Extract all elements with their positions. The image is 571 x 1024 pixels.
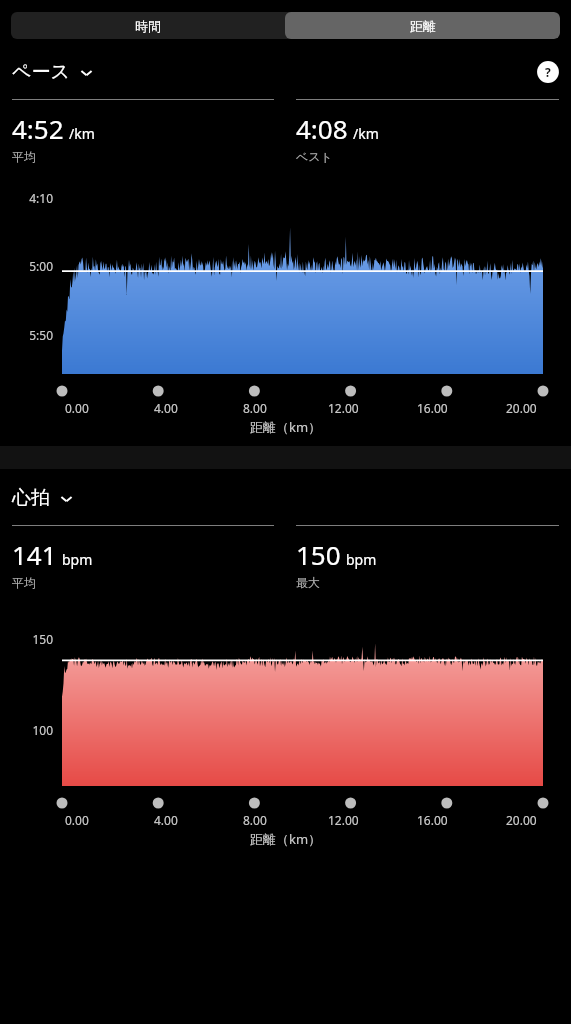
button[interactable]: 時間 bbox=[11, 12, 285, 39]
button[interactable]: ヘルプ bbox=[536, 60, 560, 84]
staticText: 150 bbox=[296, 537, 341, 572]
button[interactable]: 心拍 bbox=[0, 483, 571, 513]
staticText: 4:10 bbox=[3, 190, 53, 206]
staticText: 平均 bbox=[12, 149, 36, 164]
staticText: 141 bbox=[12, 537, 57, 572]
staticText: 最大 bbox=[296, 575, 320, 590]
staticText: bpm bbox=[62, 550, 93, 569]
staticText: 8.00 bbox=[243, 812, 267, 828]
staticText: 4:08 bbox=[296, 111, 348, 146]
staticText: 16.00 bbox=[417, 812, 448, 828]
staticText: 時間 bbox=[135, 18, 161, 34]
staticText: 5:00 bbox=[3, 258, 53, 274]
staticText: 距離（km） bbox=[250, 418, 322, 436]
staticText: ? bbox=[545, 64, 551, 80]
button[interactable]: ペース bbox=[0, 60, 536, 84]
staticText: 4.00 bbox=[154, 400, 178, 416]
staticText: /km bbox=[69, 124, 95, 143]
staticText: 100 bbox=[3, 722, 53, 738]
staticText: 16.00 bbox=[417, 400, 448, 416]
staticText: 20.00 bbox=[506, 400, 537, 416]
staticText: 距離（km） bbox=[250, 830, 322, 848]
staticText: 12.00 bbox=[328, 812, 359, 828]
staticText: 150 bbox=[3, 631, 53, 647]
staticText: 距離 bbox=[410, 18, 436, 34]
staticText: 0.00 bbox=[65, 812, 89, 828]
staticText: 4.00 bbox=[154, 812, 178, 828]
staticText: /km bbox=[353, 124, 379, 143]
button[interactable]: 距離 bbox=[285, 12, 560, 39]
staticText: 8.00 bbox=[243, 400, 267, 416]
staticText: ペース bbox=[12, 60, 70, 84]
staticText: 5:50 bbox=[3, 327, 53, 343]
staticText: 20.00 bbox=[506, 812, 537, 828]
staticText: 心拍 bbox=[12, 486, 50, 510]
staticText: 0.00 bbox=[65, 400, 89, 416]
staticText: 12.00 bbox=[328, 400, 359, 416]
staticText: 4:52 bbox=[12, 111, 64, 146]
staticText: ベスト bbox=[296, 149, 333, 164]
staticText: bpm bbox=[346, 550, 377, 569]
staticText: 平均 bbox=[12, 575, 36, 590]
